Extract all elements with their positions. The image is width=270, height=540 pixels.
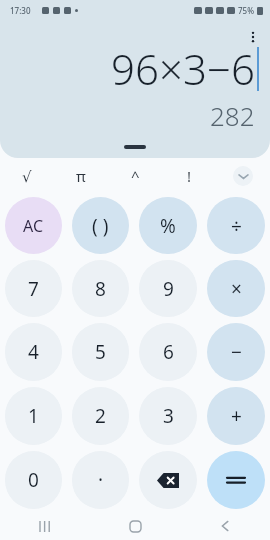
button[interactable]: Backspace <box>139 451 197 509</box>
staticText: 4 <box>28 339 39 365</box>
staticText: 9 <box>163 276 174 302</box>
button[interactable]: 9 <box>139 260 197 317</box>
button[interactable]: 2 <box>72 387 129 445</box>
button[interactable]: % <box>139 197 197 254</box>
staticText: π <box>76 166 86 186</box>
button[interactable]: 4 <box>5 323 62 381</box>
button[interactable]: Home <box>90 512 180 540</box>
staticText: ! <box>187 166 192 186</box>
button[interactable]: π <box>54 158 108 194</box>
button[interactable]: ^ <box>108 158 162 194</box>
staticText: ÷ <box>231 213 242 239</box>
staticText: + <box>231 403 242 429</box>
staticText: 1 <box>28 403 39 429</box>
button[interactable]: Back <box>180 512 270 540</box>
staticText: 6 <box>163 339 174 365</box>
button[interactable]: More functions <box>216 158 270 194</box>
staticText: 8 <box>95 276 106 302</box>
staticText: 75% <box>238 5 254 16</box>
staticText: 3 <box>163 403 174 429</box>
button[interactable]: Expand history <box>120 141 150 153</box>
staticText: 17:30 <box>10 5 31 16</box>
button[interactable]: Recents <box>0 512 90 540</box>
staticText: ( ) <box>92 213 109 239</box>
staticText: 5 <box>95 339 106 365</box>
staticText: 7 <box>28 276 39 302</box>
button[interactable]: 0 <box>5 451 62 509</box>
staticText: 282 <box>210 98 255 133</box>
staticText: √ <box>22 168 32 185</box>
button[interactable]: 7 <box>5 260 62 317</box>
staticText: ^ <box>131 166 140 186</box>
button[interactable]: More options <box>241 25 265 49</box>
button[interactable]: × <box>207 260 265 317</box>
staticText: × <box>231 276 242 302</box>
staticText: % <box>160 213 176 239</box>
staticText: − <box>231 339 242 365</box>
button[interactable]: − <box>207 323 265 381</box>
button[interactable]: Equals <box>207 451 265 509</box>
button[interactable]: + <box>207 387 265 445</box>
button[interactable]: · <box>72 451 129 509</box>
button[interactable]: 1 <box>5 387 62 445</box>
button[interactable]: 6 <box>139 323 197 381</box>
button[interactable]: √ <box>0 158 54 194</box>
button[interactable]: ! <box>162 158 216 194</box>
button[interactable]: AC <box>5 197 62 254</box>
staticText: · <box>98 467 104 493</box>
button[interactable]: 8 <box>72 260 129 317</box>
button[interactable]: 3 <box>139 387 197 445</box>
button[interactable]: 5 <box>72 323 129 381</box>
button[interactable]: ( ) <box>72 197 129 254</box>
staticText: AC <box>23 215 44 237</box>
staticText: 0 <box>28 467 39 493</box>
staticText: 2 <box>95 403 106 429</box>
button[interactable]: ÷ <box>207 197 265 254</box>
staticText: 96×3−6 <box>111 40 255 97</box>
